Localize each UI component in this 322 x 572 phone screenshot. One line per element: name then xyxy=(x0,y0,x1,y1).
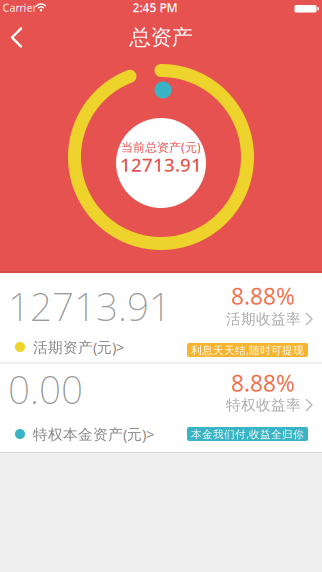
staticText: 0.00 xyxy=(8,363,83,415)
staticText: 8.88% xyxy=(231,281,295,311)
staticText: 12713.91 xyxy=(120,152,202,177)
staticText: 当前总资产(元) xyxy=(121,139,201,155)
button[interactable]: Back xyxy=(1,19,31,55)
staticText: 12713.91 xyxy=(8,280,171,332)
staticText: 特权本金资产(元)> xyxy=(33,424,154,444)
staticText: 活期资产(元)> xyxy=(33,337,124,357)
staticText: 利息天天结,随时可提现 xyxy=(191,343,304,357)
staticText: 本金我们付,收益全归你 xyxy=(191,427,304,441)
button[interactable]: 活期资产(元)> xyxy=(0,337,322,357)
staticText: 2:45 PM xyxy=(132,0,177,15)
button[interactable]: 活期收益率 xyxy=(0,310,322,328)
button[interactable]: 特权收益率 xyxy=(0,396,322,414)
staticText: Carrier xyxy=(2,0,36,15)
staticText: 8.88% xyxy=(231,368,295,398)
button[interactable]: 特权本金资产(元)> xyxy=(0,424,322,444)
staticText: 特权收益率 xyxy=(226,396,301,414)
staticText: 活期收益率 xyxy=(226,310,301,328)
staticText: 总资产 xyxy=(129,24,192,51)
